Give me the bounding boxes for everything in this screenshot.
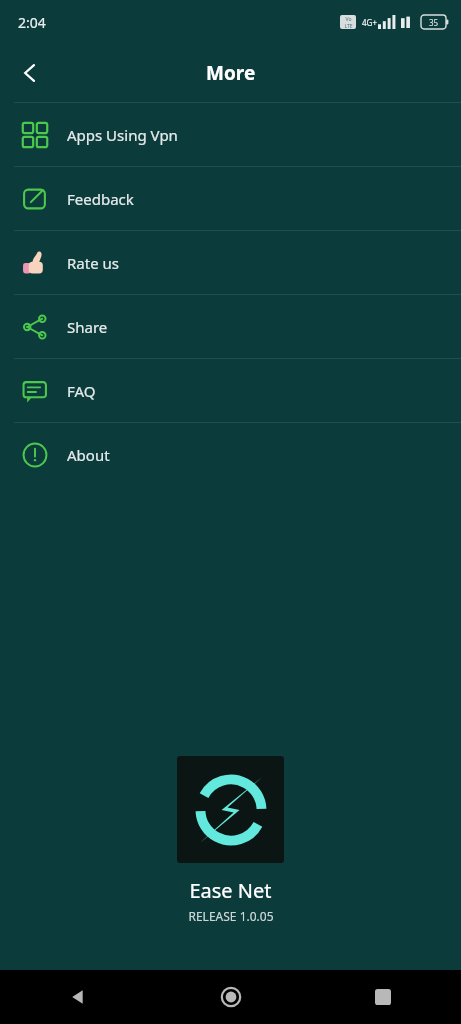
staticText: More	[206, 60, 256, 86]
staticText: 35	[429, 17, 439, 28]
button[interactable]: Feedback	[0, 167, 461, 230]
staticText: RELEASE 1.0.05	[188, 908, 274, 924]
staticText: Vo LTE	[344, 16, 353, 29]
staticText: Apps Using Vpn	[67, 125, 178, 145]
staticText: Share	[67, 317, 108, 337]
staticText: About	[67, 445, 110, 465]
button[interactable]: Recent apps	[361, 975, 405, 1019]
button[interactable]: Back	[56, 975, 100, 1019]
button[interactable]: About	[0, 423, 461, 486]
staticText: Feedback	[67, 189, 134, 209]
button[interactable]: Rate us	[0, 231, 461, 294]
button[interactable]: FAQ	[0, 359, 461, 422]
button[interactable]: Back	[6, 49, 54, 97]
button[interactable]: Share	[0, 295, 461, 358]
staticText: Rate us	[67, 253, 119, 273]
staticText: FAQ	[67, 381, 96, 401]
button[interactable]: Home	[209, 975, 253, 1019]
staticText: 4G+	[362, 17, 377, 28]
staticText: 2:04	[18, 13, 46, 32]
button[interactable]: Apps Using Vpn	[0, 103, 461, 166]
staticText: Ease Net	[189, 877, 272, 904]
